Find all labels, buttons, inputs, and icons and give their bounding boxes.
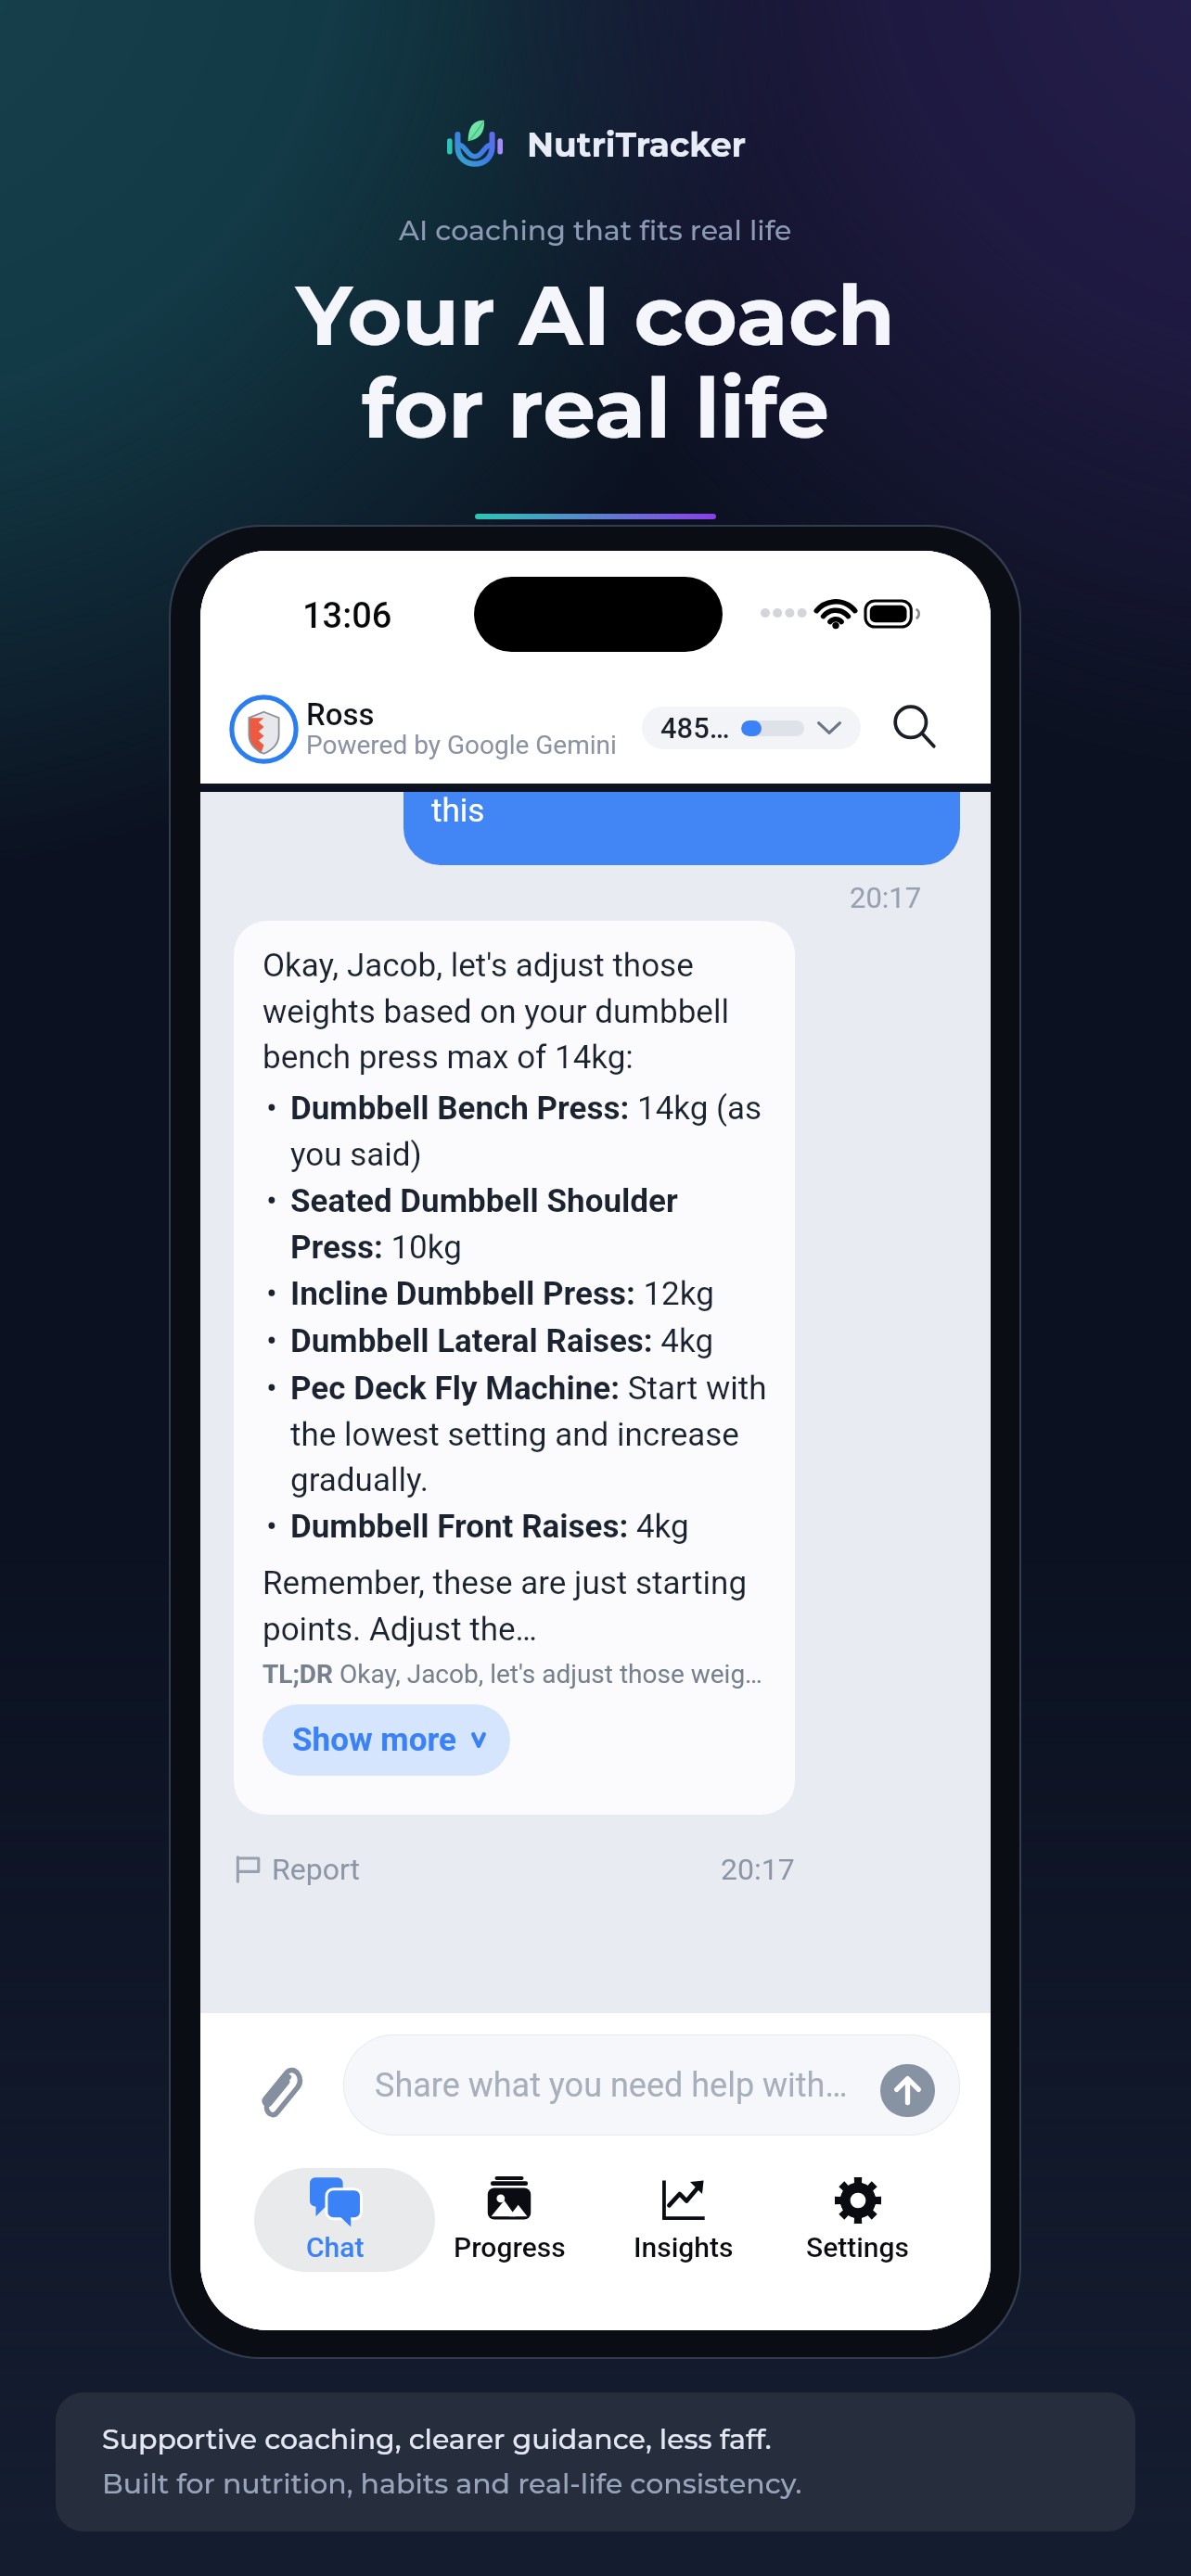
staticText: Chat: [306, 2231, 365, 2264]
staticText: Seated Dumbbell Shoulder Press: 10kg: [290, 1182, 773, 1266]
button[interactable]: Insights: [600, 2167, 767, 2272]
button[interactable]: Report: [272, 1852, 360, 1887]
staticText: Built for nutrition, habits and real-lif…: [102, 2467, 802, 2501]
staticText: •: [266, 1370, 277, 1408]
button[interactable]: Send: [880, 2064, 935, 2117]
staticText: •: [266, 1182, 277, 1220]
staticText: AI coaching that fits real life: [399, 213, 792, 248]
staticText: Share what you need help with…: [375, 2066, 848, 2105]
staticText: Okay, Jacob, let's adjust those weights …: [263, 947, 773, 1076]
staticText: •: [266, 1322, 277, 1360]
staticText: NutriTracker: [527, 124, 747, 165]
button[interactable]: Settings: [775, 2167, 941, 2272]
button[interactable]: 485…: [642, 707, 861, 749]
staticText: Incline Dumbbell Press: 12kg: [290, 1275, 714, 1313]
staticText: 20:17: [721, 1852, 795, 1887]
staticText: Ross: [306, 696, 375, 733]
staticText: •: [266, 1090, 277, 1128]
staticText: Dumbbell Lateral Raises: 4kg: [290, 1322, 714, 1360]
staticText: Dumbbell Front Raises: 4kg: [290, 1508, 689, 1546]
staticText: Progress: [454, 2231, 566, 2264]
staticText: •: [266, 1508, 277, 1546]
staticText: the rest of the weights based on this: [431, 792, 894, 829]
button[interactable]: Search: [890, 703, 939, 751]
staticText: 20:17: [850, 881, 922, 914]
button[interactable]: Chat: [251, 2167, 418, 2272]
staticText: Pec Deck Fly Machine: Start with the low…: [290, 1370, 773, 1498]
staticText: TL;DR Okay, Jacob, let's adjust those we…: [263, 1659, 762, 1690]
staticText: Supportive coaching, clearer guidance, l…: [102, 2422, 772, 2456]
staticText: Your AI coach for real life: [0, 264, 1191, 459]
staticText: Settings: [806, 2231, 910, 2264]
button[interactable]: Progress: [426, 2167, 593, 2272]
button[interactable]: Show more: [263, 1704, 510, 1776]
staticText: Remember, these are just starting points…: [263, 1564, 773, 1648]
staticText: 13:06: [302, 595, 392, 637]
staticText: 485…: [660, 711, 730, 745]
button[interactable]: Profile: [229, 695, 299, 764]
staticText: Powered by Google Gemini: [306, 730, 617, 760]
staticText: Insights: [634, 2231, 734, 2264]
staticText: •: [266, 1275, 277, 1313]
staticText: Show more: [292, 1721, 456, 1759]
button[interactable]: Attach file: [258, 2067, 299, 2117]
button[interactable]: Share what you need help with…: [343, 2034, 960, 2136]
staticText: Dumbbell Bench Press: 14kg (as you said): [290, 1090, 773, 1173]
